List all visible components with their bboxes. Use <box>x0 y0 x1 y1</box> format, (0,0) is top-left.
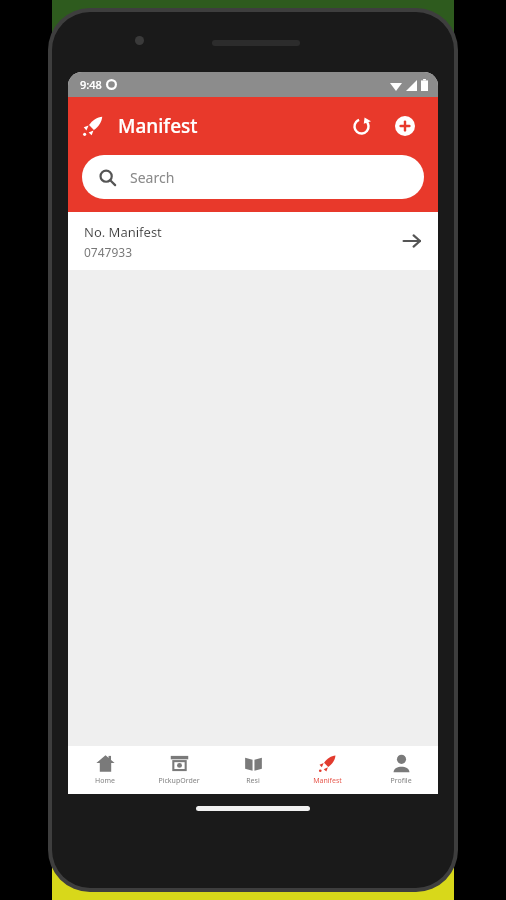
button[interactable]: Resi <box>216 746 290 794</box>
staticText: Profile <box>390 776 412 786</box>
staticText: 0747933 <box>84 244 133 260</box>
staticText: Search <box>130 168 175 187</box>
button[interactable]: Refresh <box>342 107 380 145</box>
staticText: Home <box>95 776 115 786</box>
button[interactable]: Profile <box>364 746 438 794</box>
button[interactable]: No. Manifest <box>68 212 438 270</box>
button[interactable]: PickupOrder <box>142 746 216 794</box>
staticText: Manifest <box>313 776 342 786</box>
button[interactable]: Manifest <box>290 746 364 794</box>
staticText: Resi <box>246 776 260 786</box>
staticText: PickupOrder <box>158 776 200 786</box>
button[interactable]: Home <box>68 746 142 794</box>
staticText: 9:48 <box>80 77 102 92</box>
button[interactable]: Search <box>82 155 424 199</box>
staticText: No. Manifest <box>84 223 162 241</box>
staticText: Manifest <box>118 113 198 139</box>
button[interactable]: Add manifest <box>386 107 424 145</box>
